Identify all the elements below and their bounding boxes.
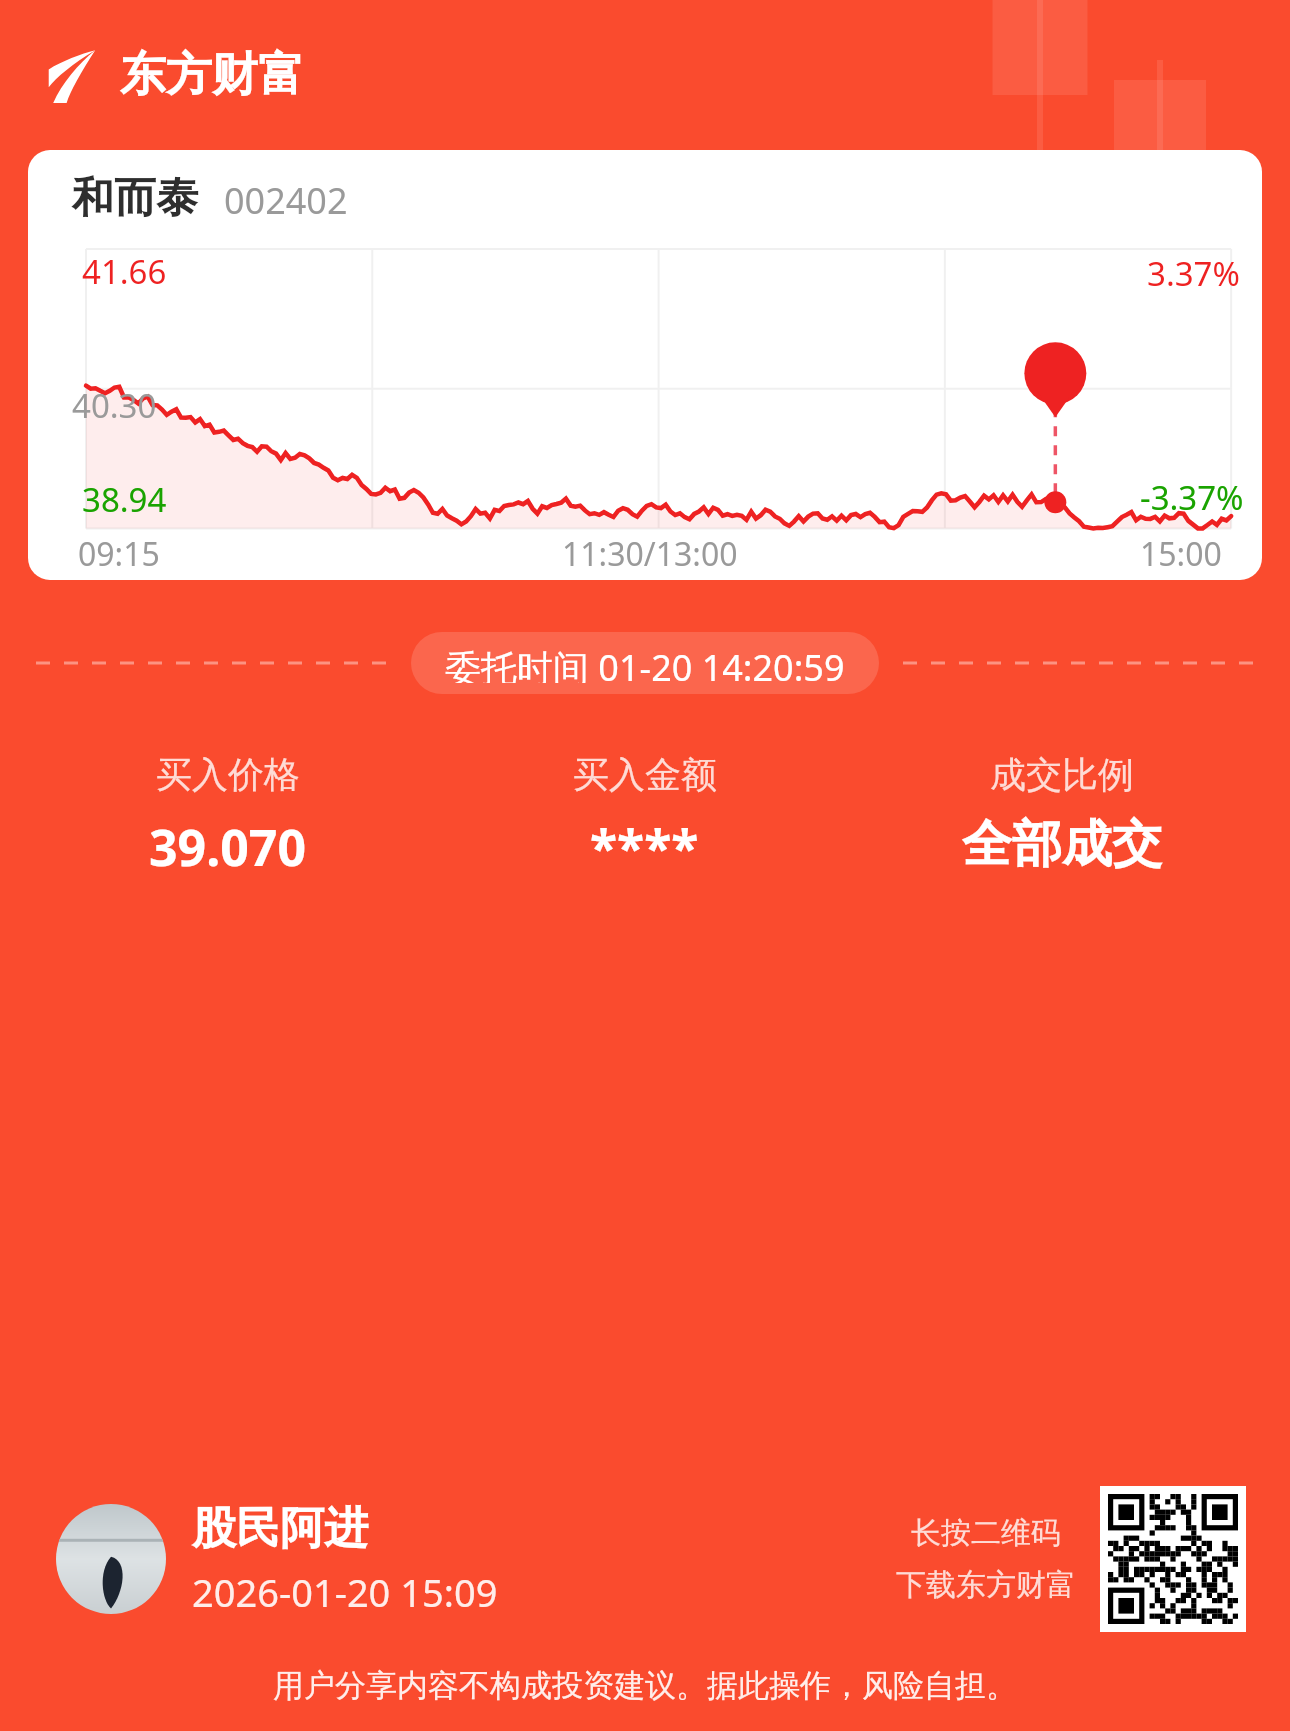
staticText: 002402 <box>224 176 348 225</box>
button[interactable]: 和而泰 <box>28 150 1262 580</box>
staticText: 15:00 <box>1140 532 1222 576</box>
staticText: 3.37% <box>1147 251 1240 296</box>
button[interactable]: 下载东方财富二维码 <box>1108 1494 1238 1624</box>
staticText: 买入金额 <box>573 752 717 797</box>
staticText: 全部成交 <box>962 813 1162 876</box>
staticText: -3.37% <box>1140 475 1244 520</box>
staticText: 东方财富 <box>120 46 304 104</box>
staticText: 股民阿进 <box>192 1501 368 1556</box>
staticText: 买入价格 <box>156 752 300 797</box>
button[interactable] <box>56 1504 166 1614</box>
staticText: **** <box>590 813 699 881</box>
button[interactable]: 买入价格 <box>20 752 436 881</box>
staticText: 40.30 <box>72 383 157 428</box>
button[interactable]: 成交比例 <box>853 752 1270 876</box>
staticText: 11:30/13:00 <box>562 532 738 576</box>
staticText: 和而泰 <box>72 172 198 225</box>
staticText: 38.94 <box>82 477 167 522</box>
staticText: 委托时间 01-20 14:20:59 <box>445 643 845 683</box>
staticText: 成交比例 <box>990 752 1134 797</box>
button[interactable]: 委托时间 01-20 14:20:59 <box>445 643 845 683</box>
staticText: 41.66 <box>82 249 167 294</box>
button[interactable]: 买入金额 <box>436 752 853 881</box>
staticText: 用户分享内容不构成投资建议。据此操作，风险自担。 <box>0 1666 1290 1705</box>
staticText: 39.070 <box>149 813 307 881</box>
staticText: 09:15 <box>78 532 160 576</box>
staticText: 下载东方财富 <box>896 1566 1076 1604</box>
staticText: 2026-01-20 15:09 <box>192 1566 498 1618</box>
staticText: 长按二维码 <box>911 1514 1061 1552</box>
